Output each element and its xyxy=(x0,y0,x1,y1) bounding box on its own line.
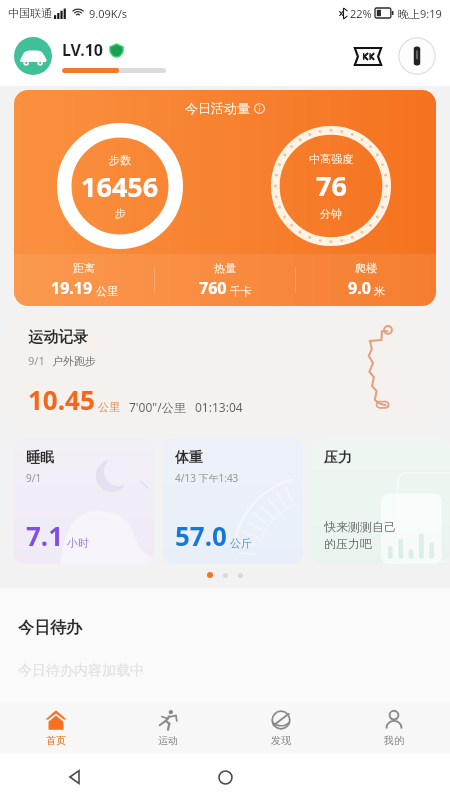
button[interactable]: 体重 xyxy=(163,438,303,564)
button[interactable]: 运动 xyxy=(112,702,224,754)
staticText: 57.0 xyxy=(175,518,227,553)
button[interactable]: Profile avatar xyxy=(14,37,52,75)
staticText: 压力 xyxy=(324,449,352,467)
staticText: 步数 xyxy=(109,153,131,167)
staticText: 16456 xyxy=(81,168,159,205)
staticText: 首页 xyxy=(46,734,66,747)
button[interactable]: Coupons xyxy=(350,38,386,74)
staticText: 公里 xyxy=(98,400,120,414)
staticText: 22% xyxy=(350,6,372,21)
staticText: 分钟 xyxy=(320,207,342,221)
staticText: 米 xyxy=(374,284,385,298)
button[interactable]: Home xyxy=(150,754,300,800)
button[interactable]: 压力 xyxy=(312,438,450,564)
staticText: 7'00"/公里 xyxy=(129,399,186,415)
staticText: 今日活动量 xyxy=(185,100,250,116)
staticText: 小时 xyxy=(67,536,89,550)
staticText: 晚上9:19 xyxy=(398,6,442,21)
button[interactable]: 我的 xyxy=(337,702,450,754)
staticText: 运动记录 xyxy=(28,328,88,347)
button[interactable]: 今日活动量 xyxy=(14,90,436,306)
button[interactable]: My device xyxy=(398,37,436,75)
staticText: 距离 xyxy=(73,261,95,275)
staticText: 今日待办内容加载中 xyxy=(18,662,144,680)
staticText: 9.0 xyxy=(348,277,371,299)
staticText: LV.10 xyxy=(62,39,104,61)
staticText: 7.1 xyxy=(26,518,64,553)
staticText: 千卡 xyxy=(230,284,252,298)
staticText: 快来测测自己 xyxy=(324,519,396,534)
staticText: 760 xyxy=(199,277,227,299)
staticText: 4/13 下午1:43 xyxy=(175,471,239,485)
staticText: 运动 xyxy=(158,734,178,747)
button[interactable]: Back xyxy=(0,754,150,800)
staticText: 爬楼 xyxy=(355,261,377,275)
button[interactable]: 运动记录 xyxy=(14,316,436,428)
staticText: 的压力吧 xyxy=(324,536,372,551)
staticText: 19.19 xyxy=(51,277,93,299)
button[interactable]: 发现 xyxy=(224,702,337,754)
staticText: 我的 xyxy=(384,734,404,747)
staticText: 中国联通 xyxy=(8,6,52,20)
staticText: 公里 xyxy=(96,284,118,298)
staticText: 01:13:04 xyxy=(195,399,243,415)
button[interactable]: 首页 xyxy=(0,702,112,754)
staticText: 9/1 xyxy=(28,353,45,368)
staticText: 发现 xyxy=(271,734,291,747)
staticText: 9/1 xyxy=(26,471,42,485)
staticText: 公斤 xyxy=(230,536,252,550)
staticText: 今日待办 xyxy=(18,618,82,638)
button[interactable]: 睡眠 xyxy=(14,438,154,564)
staticText: 中高强度 xyxy=(309,152,353,166)
staticText: 户外跑步 xyxy=(52,354,96,368)
staticText: 9.09K/s xyxy=(89,6,127,21)
staticText: 步 xyxy=(115,206,126,220)
staticText: 10.45 xyxy=(28,382,95,417)
staticText: 体重 xyxy=(175,449,203,467)
staticText: 热量 xyxy=(214,261,236,275)
staticText: 76 xyxy=(316,167,347,204)
staticText: 睡眠 xyxy=(26,449,54,467)
